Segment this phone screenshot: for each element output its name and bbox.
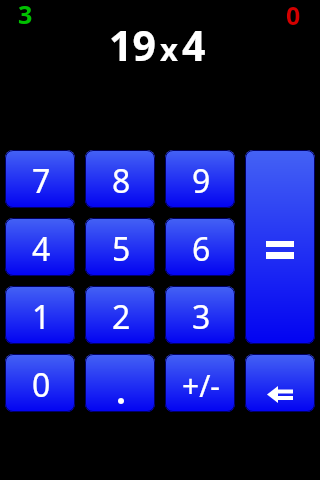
staticText: 4 — [32, 227, 51, 271]
staticText: 7 — [32, 159, 51, 203]
button[interactable]: 9 — [165, 150, 235, 208]
staticText: 5 — [112, 227, 131, 271]
staticText: 3 — [192, 295, 211, 339]
button[interactable] — [85, 354, 155, 412]
button[interactable]: 1 — [5, 286, 75, 344]
button[interactable] — [245, 354, 315, 412]
staticText: +/- — [182, 365, 220, 406]
button[interactable]: 7 — [5, 150, 75, 208]
staticText: x — [160, 28, 178, 70]
staticText: 1 — [32, 295, 51, 339]
button[interactable]: 0 — [5, 354, 75, 412]
staticText: 4 — [182, 17, 206, 73]
staticText: 3 — [18, 0, 33, 31]
button[interactable] — [245, 150, 315, 344]
staticText: 8 — [112, 159, 131, 203]
button[interactable]: 5 — [85, 218, 155, 276]
button[interactable]: 8 — [85, 150, 155, 208]
staticText: 6 — [192, 227, 211, 271]
staticText: 9 — [192, 159, 211, 203]
button[interactable]: 2 — [85, 286, 155, 344]
button[interactable]: 3 — [165, 286, 235, 344]
button[interactable]: 4 — [5, 218, 75, 276]
button[interactable]: +/- — [165, 354, 235, 412]
staticText: 19 — [109, 17, 156, 73]
button[interactable]: 6 — [165, 218, 235, 276]
staticText: 2 — [112, 295, 131, 339]
staticText: 0 — [286, 0, 301, 32]
staticText: 0 — [32, 363, 51, 407]
